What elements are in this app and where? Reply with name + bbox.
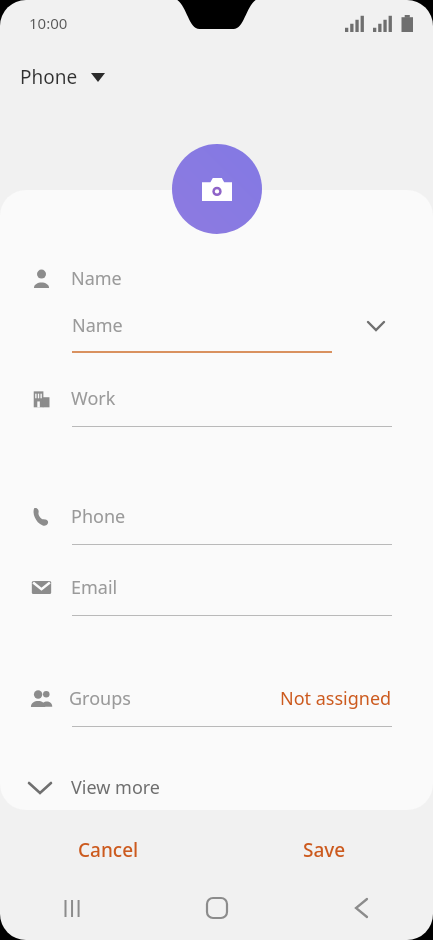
staticText: Cancel xyxy=(78,837,139,863)
staticText: View more xyxy=(71,775,161,800)
button[interactable]: Phone xyxy=(20,60,105,94)
other: Work xyxy=(31,388,52,409)
other: Groups xyxy=(29,687,53,711)
staticText: Name xyxy=(72,313,123,338)
staticText: Groups xyxy=(69,686,131,711)
other: Phone xyxy=(31,506,52,527)
button[interactable]: Add contact photo xyxy=(172,144,262,234)
button[interactable]: Recent apps xyxy=(0,884,145,932)
staticText: Not assigned xyxy=(280,686,392,711)
staticText: Work xyxy=(71,386,116,411)
button[interactable]: Cancel xyxy=(0,824,216,876)
other: Expand name fields xyxy=(367,321,385,331)
button[interactable]: Back xyxy=(289,884,433,932)
staticText: Phone xyxy=(71,504,126,529)
button[interactable]: Phone xyxy=(0,504,433,545)
button[interactable]: Work xyxy=(0,386,433,427)
button[interactable]: Email xyxy=(0,575,433,616)
button[interactable]: Save xyxy=(216,824,433,876)
staticText: Save xyxy=(303,837,346,863)
staticText: Phone xyxy=(20,64,78,90)
staticText: Name xyxy=(71,266,122,291)
other: Email xyxy=(31,577,52,598)
button[interactable]: View more xyxy=(0,775,433,800)
staticText: 10:00 xyxy=(29,13,68,33)
button[interactable]: Home xyxy=(145,884,289,932)
staticText: Email xyxy=(71,575,118,600)
other: Person xyxy=(31,268,52,289)
button[interactable]: Groups xyxy=(0,686,433,727)
button[interactable]: Name xyxy=(0,313,433,353)
button[interactable]: Person xyxy=(0,266,433,291)
